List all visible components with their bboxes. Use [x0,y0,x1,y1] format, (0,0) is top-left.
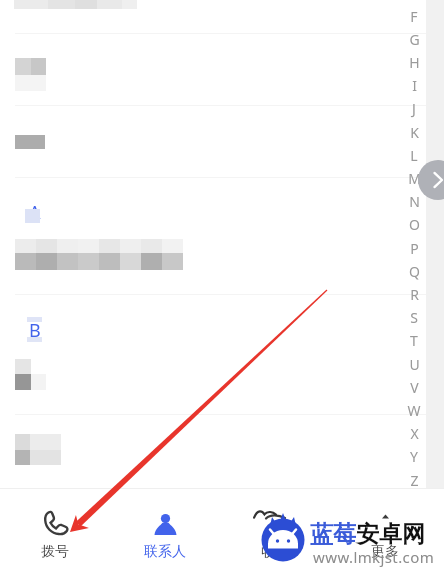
staticText: X [410,424,419,443]
staticText: 安卓网 [356,520,425,549]
button[interactable]: K [403,121,425,144]
button[interactable]: Q [403,260,425,283]
button[interactable]: J [403,97,425,120]
button[interactable]: R [403,283,425,306]
button[interactable]: L [403,144,425,167]
staticText: V [410,378,419,397]
button[interactable]: V [403,376,425,399]
button[interactable]: N [403,190,425,213]
button[interactable]: W [403,399,425,422]
staticText: O [409,215,420,234]
button[interactable]: X [403,422,425,445]
button[interactable]: O [403,213,425,236]
button[interactable]: Z [403,469,425,492]
staticText: 收藏 [261,543,289,561]
button[interactable]: H [403,51,425,74]
button[interactable]: 收藏 [220,489,330,570]
button[interactable]: T [403,329,425,352]
staticText: L [410,146,418,165]
staticText: I [412,76,417,95]
staticText: W [407,401,421,420]
staticText: K [410,123,419,142]
staticText: F [410,7,418,26]
button[interactable]: F [403,5,425,28]
staticText: S [410,308,418,327]
staticText: 蓝莓 [310,520,356,549]
staticText: 更多 [371,543,399,561]
staticText: Z [410,471,419,490]
staticText: P [410,239,419,258]
staticText: R [410,285,419,304]
staticText: A [29,200,41,225]
button[interactable]: Expand [418,160,444,200]
button[interactable]: S [403,306,425,329]
staticText: 联系人 [144,543,186,561]
button[interactable]: 更多 [330,489,440,570]
staticText: T [410,331,418,350]
staticText: Q [409,262,420,281]
button[interactable]: P [403,237,425,260]
staticText: H [409,53,420,72]
staticText: J [412,99,416,118]
button[interactable]: I [403,74,425,97]
button[interactable]: U [403,353,425,376]
staticText: N [409,192,420,211]
staticText: www.lmkjst.com [313,547,435,567]
staticText: G [409,30,420,49]
staticText: M [408,169,421,188]
staticText: Y [410,447,418,466]
button[interactable]: G [403,28,425,51]
staticText: B [29,318,41,343]
button[interactable]: Y [403,445,425,468]
staticText: U [409,355,420,374]
button[interactable]: M [403,167,425,190]
button[interactable]: 联系人 [110,489,220,570]
button[interactable]: 拨号 [0,489,110,570]
staticText: 拨号 [41,543,69,561]
